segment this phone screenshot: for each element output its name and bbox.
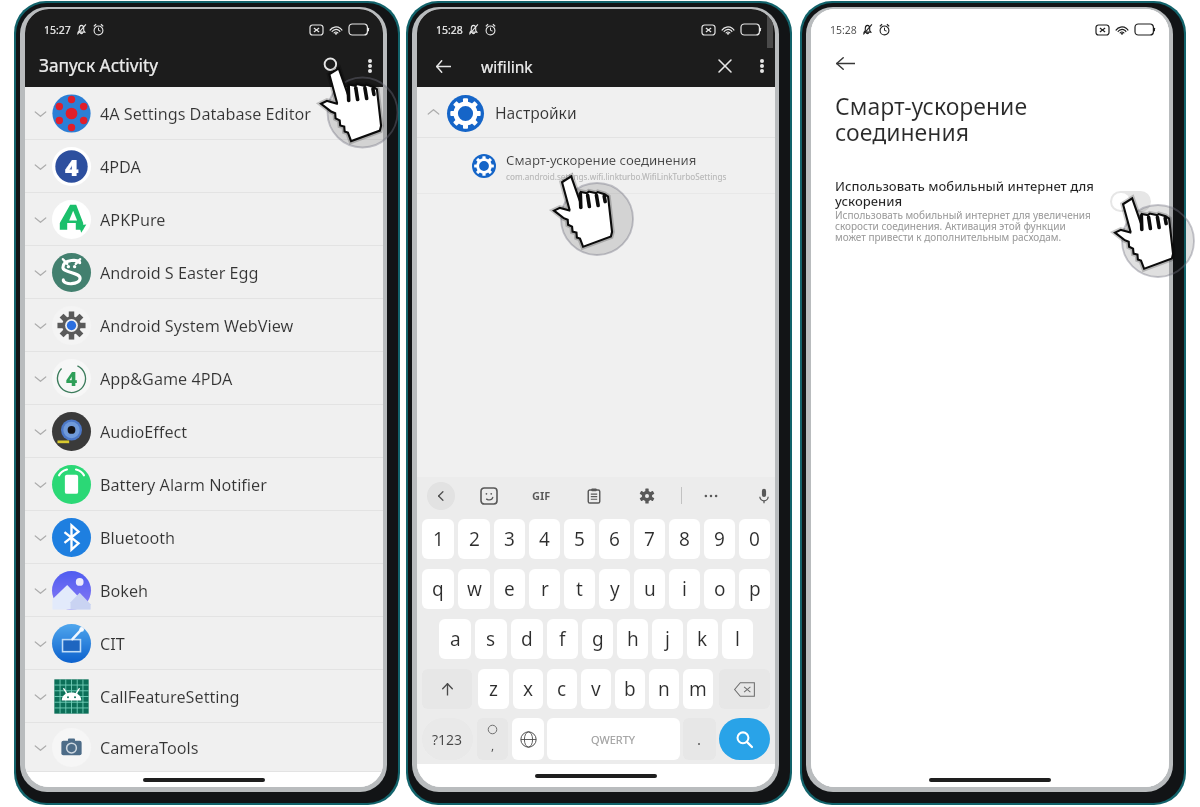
button[interactable]: 4 — [25, 352, 383, 405]
button[interactable]: m — [683, 669, 713, 709]
staticText: CameraTools — [100, 737, 199, 759]
staticText: Смарт-ускорение соединения — [506, 151, 697, 169]
button[interactable]: 1 — [422, 519, 454, 559]
button[interactable]: 0 — [739, 519, 770, 559]
button[interactable]: i — [669, 569, 700, 609]
button[interactable]: QWERTY — [547, 718, 680, 760]
button[interactable]: 5 — [564, 519, 595, 559]
staticText: Смарт-ускорение соединения — [835, 90, 1028, 148]
button[interactable]: Change language — [512, 718, 544, 760]
button[interactable]: l — [722, 619, 753, 659]
button[interactable]: Backspace — [719, 669, 770, 709]
button[interactable]: r — [529, 569, 560, 609]
button[interactable]: p — [739, 569, 770, 609]
staticText: , — [491, 737, 495, 753]
staticText: 9 — [714, 526, 725, 552]
button[interactable]: CIT — [25, 617, 383, 670]
staticText: 4 — [539, 526, 550, 552]
button[interactable]: 4 — [25, 140, 383, 193]
staticText: 3 — [504, 526, 515, 552]
button[interactable]: 7 — [634, 519, 665, 559]
button[interactable]: More options — [356, 45, 383, 87]
button[interactable]: More options — [748, 45, 775, 87]
button[interactable]: Search — [307, 45, 356, 87]
staticText: 4PDA — [100, 156, 141, 178]
staticText: o — [714, 576, 726, 602]
button[interactable]: Back — [824, 42, 867, 85]
staticText: 8 — [679, 526, 690, 552]
button[interactable]: 4 — [529, 519, 560, 559]
button[interactable]: . — [683, 718, 716, 760]
button[interactable]: More — [699, 484, 723, 508]
button[interactable]: 8 — [669, 519, 700, 559]
button[interactable]: Смарт-ускорение соединения — [417, 138, 775, 194]
button[interactable]: t — [564, 569, 595, 609]
button[interactable]: Search — [719, 718, 770, 760]
button[interactable]: v — [581, 669, 611, 709]
button[interactable]: y — [599, 569, 630, 609]
staticText: v — [591, 676, 601, 702]
button[interactable]: 4A Settings Database Editor — [25, 87, 383, 140]
button[interactable]: e — [494, 569, 525, 609]
button[interactable]: Back — [417, 45, 469, 87]
button[interactable]: Clipboard — [582, 484, 606, 508]
staticText: h — [627, 626, 639, 652]
button[interactable]: Battery Alarm Notifier — [25, 458, 383, 511]
button[interactable]: Bokeh — [25, 564, 383, 617]
button[interactable]: Stickers — [477, 484, 501, 508]
button[interactable]: z — [478, 669, 509, 709]
button[interactable]: Shift — [422, 669, 472, 709]
button[interactable]: Настройки — [417, 87, 775, 138]
button[interactable]: Android System WebView — [25, 299, 383, 352]
button[interactable]: j — [652, 619, 683, 659]
button[interactable]: g — [582, 619, 613, 659]
staticText: s — [486, 626, 496, 652]
button[interactable]: Voice input — [753, 484, 775, 508]
button[interactable]: Bluetooth — [25, 511, 383, 564]
button[interactable]: 3 — [494, 519, 525, 559]
button[interactable]: d — [511, 619, 543, 659]
staticText: n — [658, 676, 670, 702]
staticText: f — [559, 626, 566, 652]
button[interactable]: Android S Easter Egg — [25, 246, 383, 299]
button[interactable]: AudioEffect — [25, 405, 383, 458]
button[interactable]: k — [687, 619, 718, 659]
button[interactable]: x — [513, 669, 543, 709]
button[interactable]: b — [615, 669, 645, 709]
button[interactable]: Toggle mobile boost — [1110, 191, 1151, 212]
button[interactable]: w — [458, 569, 490, 609]
staticText: 5 — [574, 526, 585, 552]
staticText: q — [432, 576, 444, 602]
staticText: m — [689, 676, 707, 702]
button[interactable]: Emoji — [477, 718, 508, 760]
button[interactable]: CallFeatureSetting — [25, 670, 383, 723]
button[interactable]: h — [617, 619, 648, 659]
button[interactable]: c — [547, 669, 577, 709]
button[interactable]: a — [439, 619, 471, 659]
staticText: APKPure — [100, 209, 166, 231]
staticText: QWERTY — [591, 732, 636, 747]
button[interactable]: Keyboard settings — [635, 484, 659, 508]
button[interactable] — [811, 169, 1169, 227]
staticText: k — [697, 626, 708, 652]
button[interactable]: APKPure — [25, 193, 383, 246]
button[interactable]: f — [547, 619, 578, 659]
button[interactable]: ?123 — [422, 718, 473, 760]
button[interactable]: q — [422, 569, 454, 609]
staticText: 7 — [644, 526, 655, 552]
button[interactable]: CameraTools — [25, 723, 383, 772]
button[interactable]: Collapse — [427, 482, 455, 510]
staticText: CIT — [100, 633, 125, 655]
button[interactable]: u — [634, 569, 665, 609]
staticText: u — [644, 576, 656, 602]
staticText: z — [489, 676, 498, 702]
staticText: i — [682, 576, 687, 602]
button[interactable]: s — [475, 619, 507, 659]
button[interactable]: Clear — [702, 45, 748, 87]
button[interactable]: 6 — [599, 519, 630, 559]
button[interactable]: 2 — [458, 519, 490, 559]
button[interactable]: n — [649, 669, 679, 709]
button[interactable]: o — [704, 569, 735, 609]
staticText: 4 — [66, 366, 78, 392]
button[interactable]: 9 — [704, 519, 735, 559]
